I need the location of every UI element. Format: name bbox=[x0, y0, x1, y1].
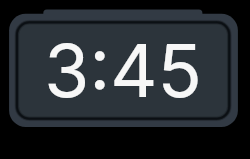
button[interactable]: Clock showing 3:45 bbox=[0, 0, 250, 159]
staticText: 3:45 bbox=[0, 26, 248, 159]
